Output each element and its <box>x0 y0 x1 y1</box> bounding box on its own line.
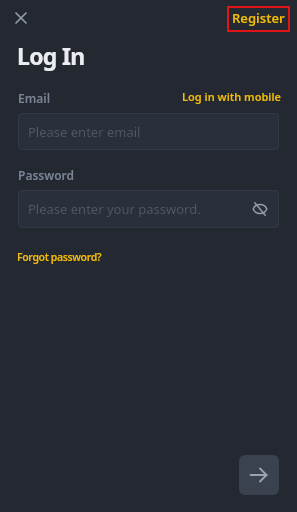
staticText: Please enter email <box>28 123 141 141</box>
staticText: Email <box>18 90 51 106</box>
staticText: Password <box>18 167 75 183</box>
button[interactable]: Register <box>227 6 290 32</box>
staticText: Register <box>232 9 285 27</box>
staticText: Log In <box>17 40 85 71</box>
button[interactable]: Forgot password? <box>17 250 102 264</box>
button[interactable]: Please enter email <box>18 113 279 150</box>
staticText: Forgot password? <box>17 250 102 264</box>
staticText: Log in with mobile <box>182 89 282 104</box>
button[interactable] <box>9 6 33 30</box>
button[interactable]: Log in with mobile <box>182 89 282 104</box>
staticText: Please enter your password. <box>28 200 201 218</box>
button[interactable] <box>239 455 279 495</box>
button[interactable]: Please enter your password. <box>18 190 279 228</box>
